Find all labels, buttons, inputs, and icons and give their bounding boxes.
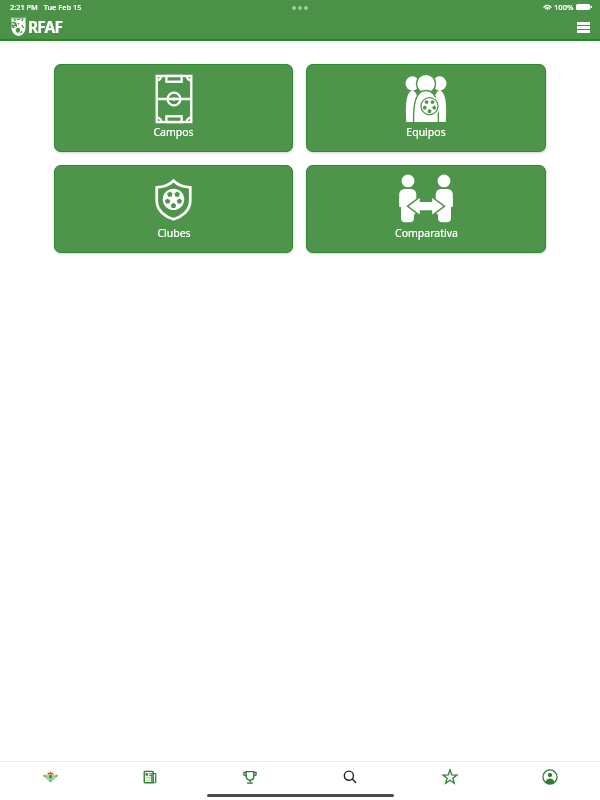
staticText: 2:21 PM Tue Feb 15 — [10, 2, 82, 12]
staticText: RFAF — [28, 16, 63, 37]
button[interactable]: Competiciones — [200, 762, 300, 791]
staticText: 100% — [554, 2, 574, 12]
button[interactable]: Equipos — [306, 64, 546, 152]
staticText: Clubes — [157, 226, 191, 240]
button[interactable]: Menu — [569, 16, 597, 39]
button[interactable]: Perfil — [500, 762, 600, 791]
button[interactable]: Favoritos — [400, 762, 500, 791]
button[interactable]: Comparativa — [306, 165, 546, 253]
button[interactable]: Campos — [54, 64, 293, 152]
button[interactable]: Buscar — [300, 762, 400, 791]
staticText: Campos — [153, 125, 194, 139]
button[interactable]: Noticias — [100, 762, 200, 791]
staticText: Comparativa — [395, 226, 458, 240]
staticText: Equipos — [406, 125, 446, 139]
button[interactable]: Clubes — [54, 165, 293, 253]
button[interactable]: Inicio — [0, 762, 100, 791]
